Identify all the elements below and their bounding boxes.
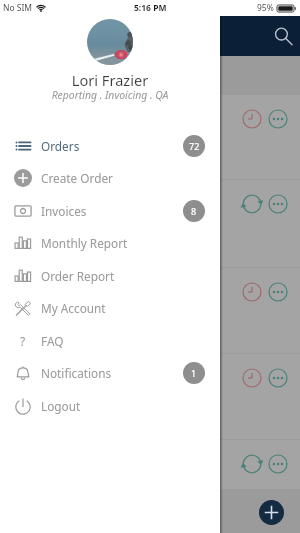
staticText: FAQ <box>41 333 64 349</box>
button[interactable]: ? <box>0 325 220 357</box>
button[interactable]: Status <box>221 440 300 489</box>
staticText: 1 <box>191 367 197 379</box>
button[interactable]: Create Order <box>0 162 220 194</box>
staticText: Monthly Report <box>41 235 128 251</box>
staticText: Order Report <box>41 268 115 284</box>
staticText: Reporting . Invoicing . QA <box>0 88 220 102</box>
staticText: Orders <box>41 138 80 154</box>
button[interactable]: Status <box>242 282 262 302</box>
staticText: 8 <box>191 205 197 217</box>
staticText: Invoices <box>41 203 87 219</box>
staticText: My Account <box>41 300 106 316</box>
button[interactable]: More <box>268 194 288 214</box>
staticText: Notifications <box>41 365 112 381</box>
button[interactable]: Status <box>242 454 262 474</box>
button[interactable]: Profile photo <box>87 19 133 65</box>
button[interactable]: Order Report <box>0 260 220 292</box>
staticText: 5:16 PM <box>134 2 167 14</box>
button[interactable]: More <box>268 109 288 129</box>
button[interactable]: More <box>268 282 288 302</box>
staticText: Logout <box>41 398 81 414</box>
button[interactable]: Monthly Report <box>0 227 220 259</box>
staticText: 95% <box>257 2 274 14</box>
button[interactable]: More <box>268 454 288 474</box>
button[interactable]: Invoices <box>0 195 220 227</box>
staticText: Create Order <box>41 170 113 186</box>
button[interactable]: My Account <box>0 292 220 324</box>
button[interactable]: Status <box>221 95 300 179</box>
staticText: 72 <box>189 140 200 152</box>
staticText: Lori Frazier <box>0 70 220 90</box>
button[interactable]: Add <box>259 500 284 525</box>
button[interactable]: Search <box>268 24 292 48</box>
button[interactable]: Status <box>242 368 262 388</box>
staticText: ? <box>20 333 26 349</box>
button[interactable]: More <box>268 368 288 388</box>
button[interactable]: Status <box>221 180 300 267</box>
staticText: No SIM <box>3 2 33 14</box>
button[interactable]: Status <box>221 268 300 353</box>
button[interactable]: Status <box>221 354 300 439</box>
button[interactable]: Notifications <box>0 357 220 389</box>
button[interactable]: Orders <box>0 130 220 162</box>
button[interactable]: Logout <box>0 390 220 422</box>
button[interactable]: Status <box>242 109 262 129</box>
button[interactable]: Status <box>242 194 262 214</box>
